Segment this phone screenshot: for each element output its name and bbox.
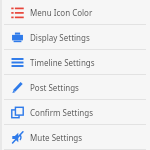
other: Confirm settings [11,106,24,119]
button[interactable]: Display settings [0,25,150,49]
button[interactable]: Mute settings [0,125,150,149]
button[interactable]: Menu icon color [0,0,150,24]
other: Mute settings [11,131,24,144]
other: Post settings [11,81,24,94]
staticText: Menu Icon Color [30,7,93,18]
staticText: Mute Settings [30,132,83,143]
other: Display settings [11,31,24,44]
staticText: Confirm Settings [30,107,93,118]
other: Timeline settings [11,56,24,69]
staticText: Timeline Settings [30,57,95,68]
button[interactable]: Confirm settings [0,100,150,124]
button[interactable]: Timeline settings [0,50,150,74]
other: Menu icon color [11,6,24,19]
button[interactable]: Post settings [0,75,150,99]
staticText: Post Settings [30,82,79,93]
staticText: Display Settings [30,32,90,43]
